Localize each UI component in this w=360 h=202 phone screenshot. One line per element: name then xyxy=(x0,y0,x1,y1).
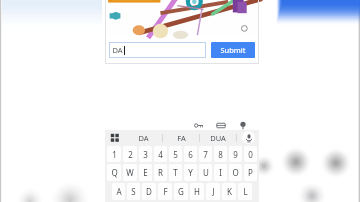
button[interactable]: O xyxy=(229,164,242,181)
button[interactable]: Voice input xyxy=(237,130,259,145)
staticText: L xyxy=(243,186,248,197)
staticText: 2 xyxy=(128,149,133,160)
button[interactable]: 4 xyxy=(154,146,167,162)
staticText: 9 xyxy=(233,149,238,160)
button[interactable]: 3 xyxy=(139,146,152,162)
button[interactable]: 8 xyxy=(214,146,227,162)
staticText: P xyxy=(248,167,253,178)
staticText: W xyxy=(126,167,134,178)
button[interactable]: Payment methods xyxy=(215,121,227,130)
staticText: A xyxy=(116,186,122,197)
staticText: F xyxy=(163,186,168,197)
button[interactable]: DUA xyxy=(200,130,236,145)
staticText: FA xyxy=(177,133,186,143)
staticText: 0 xyxy=(248,149,253,160)
button[interactable]: E xyxy=(139,164,152,181)
staticText: DA xyxy=(112,45,123,55)
staticText: E xyxy=(143,167,148,178)
staticText: I xyxy=(219,167,222,178)
button[interactable]: Addresses xyxy=(237,121,249,130)
staticText: H xyxy=(194,186,200,197)
button[interactable]: 2 xyxy=(123,146,137,162)
staticText: DA xyxy=(138,133,149,143)
button[interactable]: 1 xyxy=(107,146,121,162)
button[interactable]: H xyxy=(190,183,204,200)
button[interactable]: Q xyxy=(107,164,121,181)
staticText: 5 xyxy=(173,149,178,160)
button[interactable]: FA xyxy=(163,130,199,145)
button[interactable]: J xyxy=(206,183,220,200)
staticText: 6 xyxy=(188,149,193,160)
button[interactable]: R xyxy=(154,164,167,181)
staticText: 1 xyxy=(112,149,117,160)
staticText: 8 xyxy=(218,149,223,160)
button[interactable]: Y xyxy=(184,164,197,181)
button[interactable]: DA xyxy=(109,42,206,58)
button[interactable]: K xyxy=(222,183,236,200)
staticText: T xyxy=(173,167,178,178)
staticText: J xyxy=(212,186,215,197)
staticText: D xyxy=(146,186,152,197)
button[interactable]: Passwords xyxy=(193,121,205,130)
button[interactable]: U xyxy=(199,164,212,181)
staticText: O xyxy=(232,167,239,178)
button[interactable]: S xyxy=(127,183,140,200)
button[interactable]: Submit xyxy=(211,42,255,58)
staticText: 4 xyxy=(158,149,163,160)
staticText: G xyxy=(178,186,184,197)
staticText: Q xyxy=(111,167,118,178)
button[interactable]: W xyxy=(123,164,137,181)
staticText: Y xyxy=(188,167,193,178)
staticText: S xyxy=(131,186,136,197)
button[interactable]: 5 xyxy=(169,146,182,162)
button[interactable]: D xyxy=(142,183,156,200)
button[interactable]: 9 xyxy=(229,146,242,162)
button[interactable]: L xyxy=(238,183,252,200)
staticText: U xyxy=(203,167,209,178)
button[interactable]: T xyxy=(169,164,182,181)
button[interactable]: Open features menu xyxy=(105,130,125,145)
button[interactable]: 0 xyxy=(244,146,257,162)
button[interactable]: P xyxy=(244,164,257,181)
button[interactable]: F xyxy=(158,183,172,200)
button[interactable]: I xyxy=(214,164,227,181)
button[interactable]: DA xyxy=(125,130,162,145)
button[interactable]: G xyxy=(174,183,188,200)
staticText: 7 xyxy=(203,149,208,160)
staticText: Submit xyxy=(220,45,246,55)
button[interactable]: A xyxy=(112,183,125,200)
staticText: 3 xyxy=(143,149,148,160)
button[interactable]: 7 xyxy=(199,146,212,162)
staticText: R xyxy=(158,167,163,178)
staticText: DUA xyxy=(210,133,226,143)
button[interactable]: 6 xyxy=(184,146,197,162)
staticText: K xyxy=(227,186,232,197)
